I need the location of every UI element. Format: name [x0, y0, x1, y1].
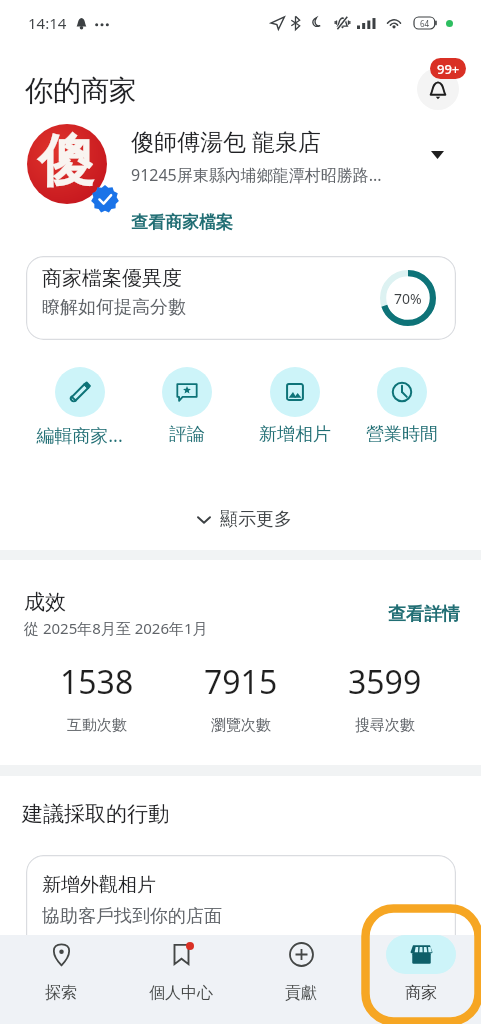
staticText: 協助客戶找到你的店面: [42, 905, 222, 928]
button[interactable]: 顯示更多: [190, 500, 300, 539]
staticText: 傻師傅湯包 龍泉店: [131, 125, 421, 156]
staticText: 新增外觀相片: [42, 873, 156, 897]
staticText: 瞭解如何提高分數: [42, 296, 186, 319]
staticText: 傻: [38, 126, 94, 197]
staticText: 你的商家: [25, 73, 137, 108]
button[interactable]: 探索: [0, 935, 121, 1003]
button[interactable]: 評論: [133, 367, 240, 446]
staticText: 99+: [437, 60, 460, 78]
button[interactable]: 查看商家檔案: [131, 212, 233, 233]
staticText: 91245屏東縣內埔鄉龍潭村昭勝路...: [131, 164, 407, 186]
button[interactable]: Switch business: [423, 141, 451, 169]
button[interactable]: 編輯商家...: [26, 367, 133, 448]
staticText: 編輯商家...: [36, 423, 123, 448]
staticText: 成效: [24, 589, 66, 615]
staticText: 搜尋次數: [355, 716, 415, 735]
staticText: 建議採取的行動: [22, 801, 169, 827]
staticText: 7915: [204, 660, 278, 704]
button[interactable]: 新增相片: [241, 367, 348, 446]
staticText: 評論: [169, 423, 205, 446]
staticText: 貢獻: [285, 983, 317, 1003]
staticText: 14:14: [28, 13, 67, 33]
staticText: 3599: [348, 660, 422, 704]
staticText: 新增相片: [259, 423, 331, 446]
staticText: 70%: [394, 289, 422, 308]
button[interactable]: 新增外觀相片: [26, 855, 456, 975]
button[interactable]: 查看詳情: [380, 599, 468, 630]
staticText: 探索: [45, 983, 77, 1003]
staticText: 商家檔案優異度: [42, 266, 182, 291]
button[interactable]: 傻: [0, 112, 481, 242]
button[interactable]: 個人中心: [121, 935, 241, 1003]
staticText: 個人中心: [149, 983, 213, 1003]
button[interactable]: Notifications: [417, 68, 459, 110]
staticText: 1538: [60, 660, 134, 704]
button[interactable]: 商家檔案優異度: [26, 256, 456, 340]
staticText: 顯示更多: [220, 508, 292, 531]
button[interactable]: 營業時間: [348, 367, 455, 446]
staticText: 商家: [405, 983, 437, 1003]
button[interactable]: 商家: [361, 935, 481, 1003]
staticText: 瀏覽次數: [211, 716, 271, 735]
staticText: 營業時間: [366, 423, 438, 446]
staticText: 互動次數: [67, 716, 127, 735]
button[interactable]: 貢獻: [241, 935, 361, 1003]
staticText: 從 2025年8月至 2026年1月: [24, 618, 208, 638]
staticText: 64: [420, 18, 430, 29]
